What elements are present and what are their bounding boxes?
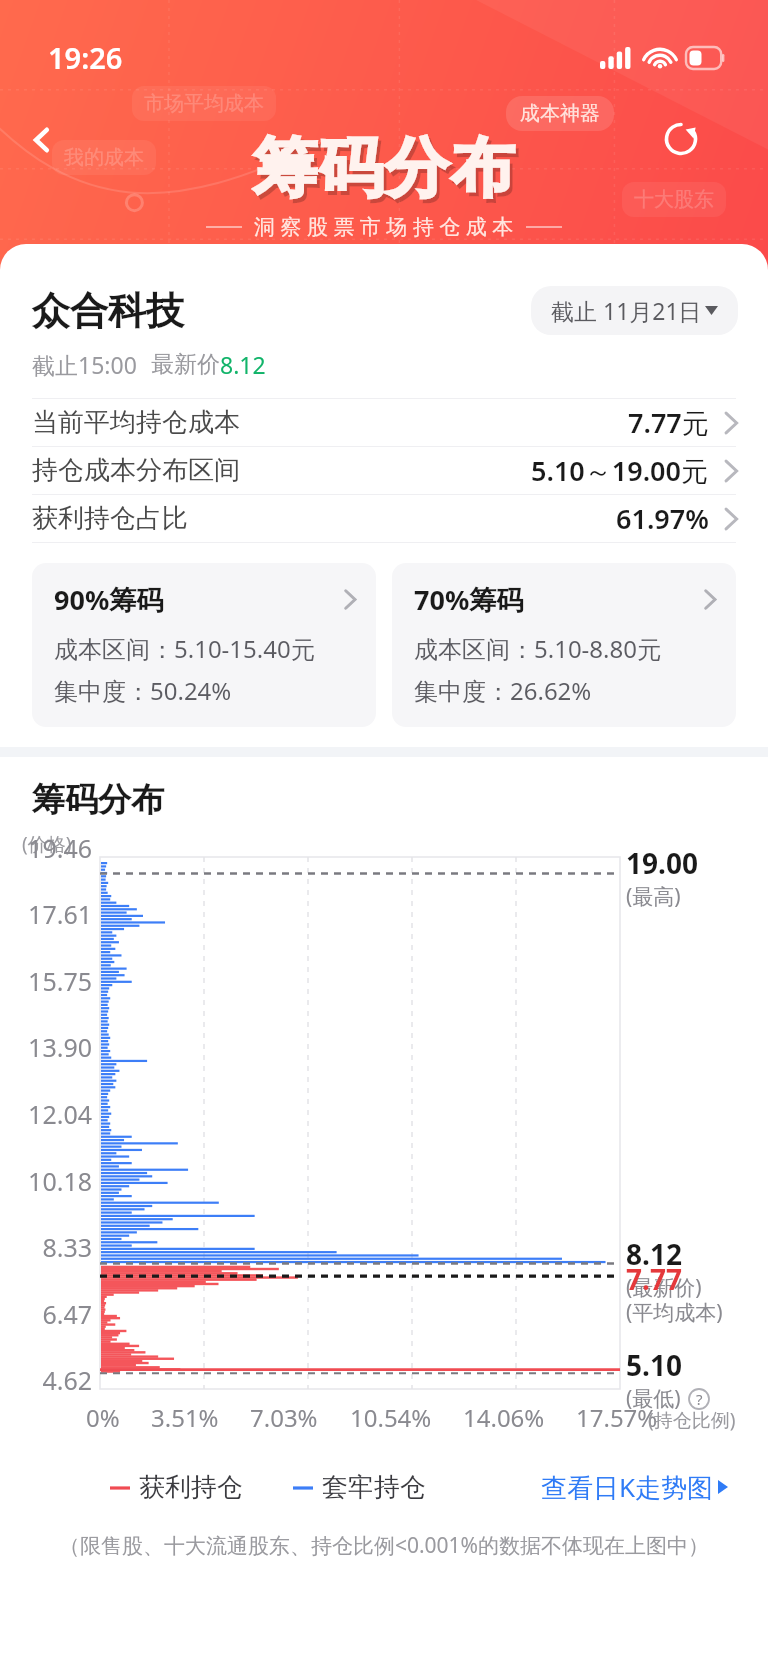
staticText: 10.18	[16, 1164, 92, 1198]
staticText: 截止15:00	[32, 349, 137, 380]
staticText: (最低)	[626, 1384, 681, 1413]
staticText: 筹码分布	[255, 132, 519, 213]
staticText: (最高)	[626, 882, 681, 911]
staticText: 6.47	[16, 1297, 92, 1331]
staticText: 7.03%	[250, 1401, 318, 1434]
staticText: 0%	[86, 1401, 120, 1434]
staticText: 90%筹码	[54, 581, 164, 618]
staticText: 筹码分布	[252, 128, 516, 209]
button[interactable]: 获利持仓占比	[0, 495, 768, 542]
button[interactable]: 查看日K走势图	[541, 1469, 728, 1505]
staticText: 十大股东	[634, 187, 714, 212]
button[interactable]: Refresh	[650, 108, 712, 170]
staticText: 15.75	[16, 964, 92, 998]
staticText: 12.04	[16, 1097, 92, 1131]
staticText: 19:26	[48, 38, 123, 77]
staticText: 集中度：50.24%	[54, 674, 232, 707]
staticText: 7.77元	[628, 404, 709, 441]
staticText: (持仓比例)	[648, 1407, 736, 1433]
staticText: 查看日K走势图	[541, 1469, 714, 1505]
staticText: 17.57%	[576, 1401, 658, 1434]
staticText: 7.77	[626, 1260, 682, 1298]
staticText: 持仓成本分布区间	[32, 454, 240, 487]
staticText: 套牢持仓	[322, 1471, 426, 1504]
staticText: (平均成本)	[626, 1298, 723, 1327]
staticText: 我的成本	[64, 145, 144, 170]
staticText: 19.00	[626, 844, 698, 882]
staticText: 3.51%	[151, 1401, 219, 1434]
button[interactable]: 截止 11月21日	[531, 286, 738, 335]
staticText: 70%筹码	[414, 581, 524, 618]
staticText: 截止 11月21日	[551, 295, 702, 326]
staticText: ?	[696, 1389, 703, 1409]
staticText: 洞 察 股 票 市 场 持 仓 成 本	[254, 212, 514, 241]
staticText: 8.12	[626, 1235, 682, 1273]
staticText: 获利持仓占比	[32, 502, 188, 535]
staticText: 最新价	[151, 350, 220, 379]
staticText: 10.54%	[350, 1401, 432, 1434]
staticText: 5.10	[626, 1346, 682, 1384]
staticText: 成本区间：5.10-15.40元	[54, 632, 315, 665]
staticText: 成本区间：5.10-8.80元	[414, 632, 661, 665]
staticText: 众合科技	[32, 287, 184, 335]
staticText: 获利持仓	[139, 1471, 243, 1504]
button[interactable]: 成本神器	[506, 96, 614, 131]
button[interactable]: Help	[687, 1387, 711, 1411]
staticText: 4.62	[16, 1363, 92, 1397]
staticText: (最新价)	[626, 1273, 702, 1302]
button[interactable]: 持仓成本分布区间	[0, 447, 768, 494]
button[interactable]: 70%筹码	[392, 563, 736, 727]
button[interactable]: 当前平均持仓成本	[0, 399, 768, 446]
staticText: 5.10～19.00元	[531, 452, 709, 489]
staticText: 14.06%	[463, 1401, 545, 1434]
staticText: 19.46	[16, 831, 92, 865]
staticText: 集中度：26.62%	[414, 674, 592, 707]
staticText: 61.97%	[616, 500, 709, 537]
staticText: 筹码分布	[32, 779, 164, 821]
staticText: 当前平均持仓成本	[32, 406, 240, 439]
staticText: (价格)	[22, 831, 72, 857]
staticText: 17.61	[16, 897, 92, 931]
button[interactable]: 90%筹码	[32, 563, 376, 727]
staticText: 8.12	[220, 349, 266, 380]
button[interactable]: Back	[14, 112, 70, 168]
staticText: 市场平均成本	[144, 91, 264, 116]
staticText: （限售股、十大流通股东、持仓比例<0.001%的数据不体现在上图中）	[0, 1531, 768, 1560]
staticText: 成本神器	[520, 101, 600, 126]
staticText: 8.33	[16, 1230, 92, 1264]
staticText: 13.90	[16, 1030, 92, 1064]
